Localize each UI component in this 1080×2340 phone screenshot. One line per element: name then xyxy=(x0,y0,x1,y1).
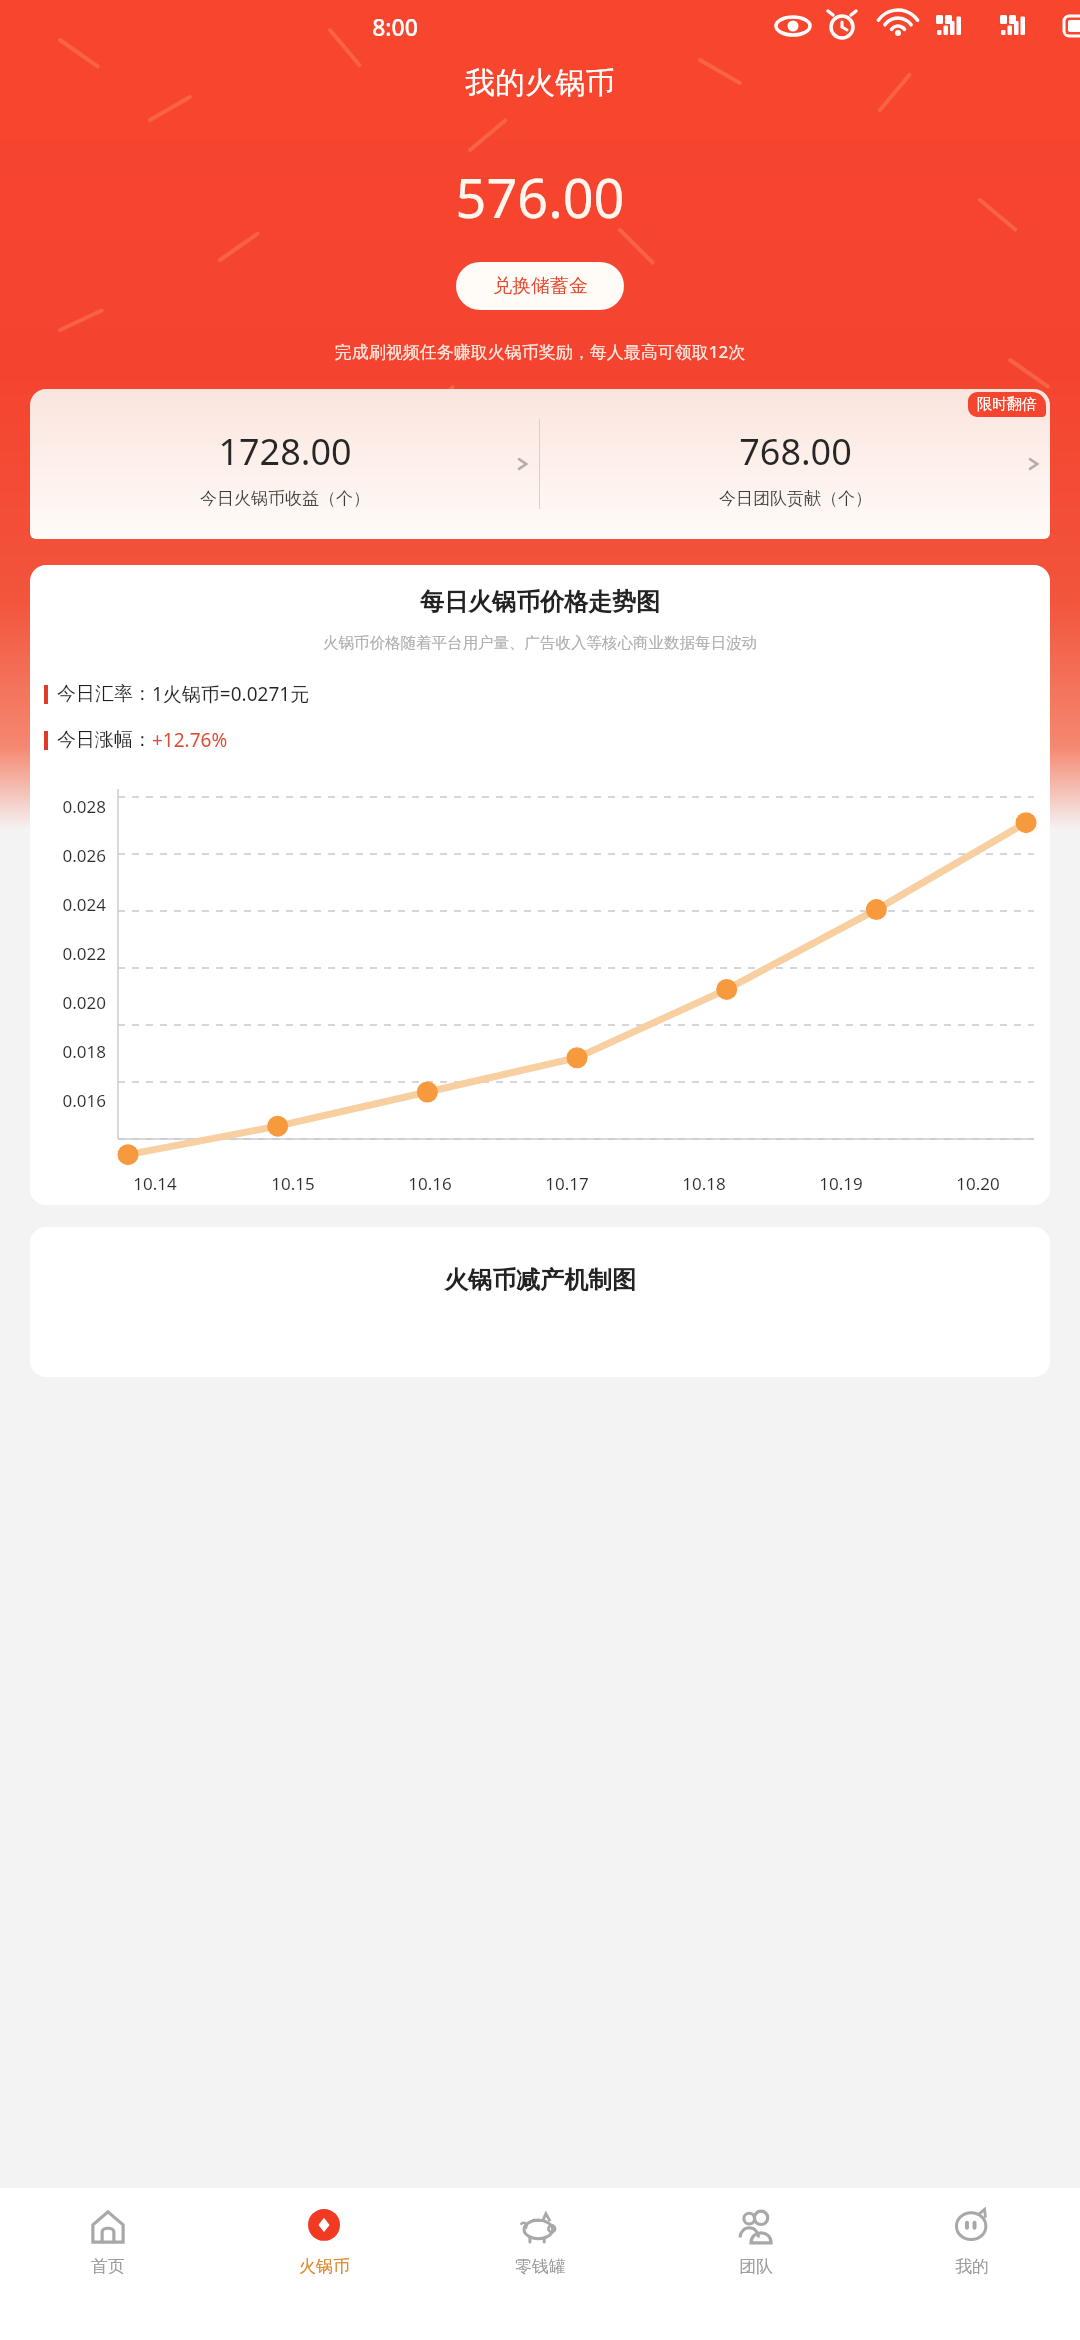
button[interactable]: 我的 xyxy=(864,2188,1080,2340)
staticText: 10.18 xyxy=(682,1172,726,1195)
button[interactable]: 火锅币 xyxy=(216,2188,432,2340)
staticText: 我的火锅币 xyxy=(0,64,1080,102)
staticText: 完成刷视频任务赚取火锅币奖励，每人最高可领取12次 xyxy=(0,340,1080,363)
staticText: 576.00 xyxy=(0,160,1080,234)
staticText: 0.026 xyxy=(30,844,106,867)
staticText: 0.018 xyxy=(30,1040,106,1063)
staticText: 1火锅币=0.0271元 xyxy=(152,681,310,707)
staticText: +12.76% xyxy=(152,727,228,753)
staticText: 我的 xyxy=(955,2256,989,2277)
staticText: 零钱罐 xyxy=(515,2256,566,2277)
staticText: 今日团队贡献（个） xyxy=(719,488,872,509)
staticText: 10.17 xyxy=(545,1172,589,1195)
staticText: 8:00 xyxy=(372,11,418,42)
staticText: 0.024 xyxy=(30,893,106,916)
button[interactable]: 首页 xyxy=(0,2188,216,2340)
staticText: 火锅币价格随着平台用户量、广告收入等核心商业数据每日波动 xyxy=(40,633,1040,653)
staticText: 火锅币减产机制图 xyxy=(30,1265,1050,1295)
staticText: 0.016 xyxy=(30,1089,106,1112)
button[interactable]: 兑换储蓄金 xyxy=(456,262,624,310)
staticText: 限时翻倍 xyxy=(977,395,1037,414)
staticText: 首页 xyxy=(91,2256,125,2277)
staticText: 10.15 xyxy=(271,1172,315,1195)
staticText: 10.14 xyxy=(133,1172,177,1195)
button[interactable]: 768.00 xyxy=(540,389,1050,539)
staticText: 10.19 xyxy=(819,1172,863,1195)
staticText: 今日火锅币收益（个） xyxy=(200,488,370,509)
button[interactable]: 零钱罐 xyxy=(432,2188,648,2340)
staticText: 1728.00 xyxy=(218,427,352,476)
button[interactable]: 限时翻倍 xyxy=(977,395,1037,414)
staticText: 今日汇率： xyxy=(57,682,152,706)
staticText: 0.022 xyxy=(30,942,106,965)
staticText: 10.20 xyxy=(956,1172,1000,1195)
staticText: 0.020 xyxy=(30,991,106,1014)
staticText: 0.028 xyxy=(30,795,106,818)
staticText: 兑换储蓄金 xyxy=(493,274,588,298)
button[interactable]: 团队 xyxy=(648,2188,864,2340)
staticText: 火锅币 xyxy=(299,2256,350,2277)
staticText: 团队 xyxy=(739,2256,773,2277)
button[interactable]: 1728.00 xyxy=(30,389,539,539)
staticText: 10.16 xyxy=(408,1172,452,1195)
staticText: 768.00 xyxy=(739,427,852,476)
staticText: 今日涨幅： xyxy=(57,728,152,752)
staticText: 每日火锅币价格走势图 xyxy=(30,587,1050,617)
